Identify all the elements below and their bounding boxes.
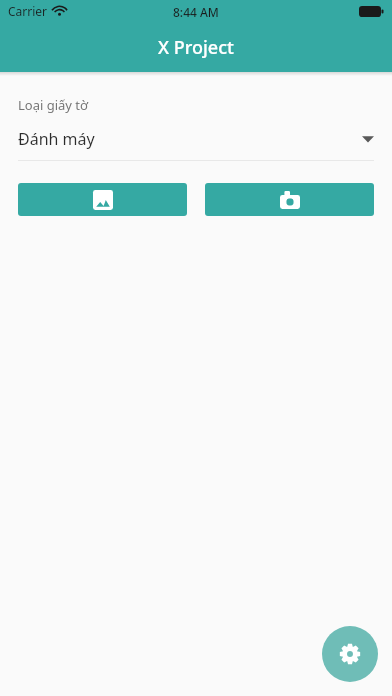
staticText: 8:44 AM bbox=[173, 4, 219, 20]
staticText: Đánh máy bbox=[18, 128, 362, 150]
button[interactable]: Choose image from gallery bbox=[18, 183, 187, 216]
button[interactable]: Take photo with camera bbox=[205, 183, 374, 216]
button[interactable]: Settings bbox=[322, 626, 378, 682]
staticText: Carrier bbox=[8, 3, 48, 19]
staticText: Loại giấy tờ bbox=[18, 96, 89, 114]
button[interactable]: Đánh máy bbox=[18, 126, 374, 152]
staticText: X Project bbox=[158, 35, 234, 60]
